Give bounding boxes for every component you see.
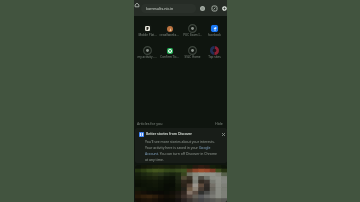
staticText: SSLC Home [184, 55, 201, 59]
staticText: Mobile Plat… [138, 33, 157, 37]
button[interactable]: Close [220, 131, 226, 137]
button[interactable]: Hide [210, 118, 223, 128]
button[interactable]: Confirm Tic… [158, 44, 180, 60]
button[interactable]: SSLC Home [181, 44, 203, 60]
staticText: Confirm Tic… [160, 55, 179, 59]
button[interactable]: facebook [203, 22, 225, 38]
button[interactable]: ceoallworks… [158, 22, 180, 38]
button[interactable]: karresults.nic.in [141, 4, 196, 13]
staticText: Hide [215, 121, 223, 126]
button[interactable]: Top sites [203, 44, 225, 60]
button[interactable]: Account [199, 5, 205, 11]
button[interactable]: News article photo [135, 165, 227, 202]
staticText: You'll see more stories about your inter… [145, 139, 219, 162]
staticText: PUC Exam I… [183, 33, 202, 37]
staticText: Better stories from Discover [146, 131, 193, 136]
staticText: karresults.nic.in [146, 6, 174, 11]
staticText: my activity -… [137, 55, 157, 59]
button[interactable]: my activity -… [136, 44, 158, 60]
staticText: ceoallworks… [159, 33, 179, 37]
button[interactable]: Switch tabs [211, 5, 217, 11]
button[interactable]: Home [134, 2, 140, 8]
button[interactable]: Mobile Plat… [136, 22, 158, 38]
staticText: facebook [208, 33, 221, 37]
staticText: Articles for you [137, 121, 163, 126]
button[interactable]: Better stories from Discover [135, 128, 227, 163]
staticText: Top sites [208, 55, 221, 59]
button[interactable]: PUC Exam I… [181, 22, 203, 38]
button[interactable]: More options [221, 5, 227, 11]
